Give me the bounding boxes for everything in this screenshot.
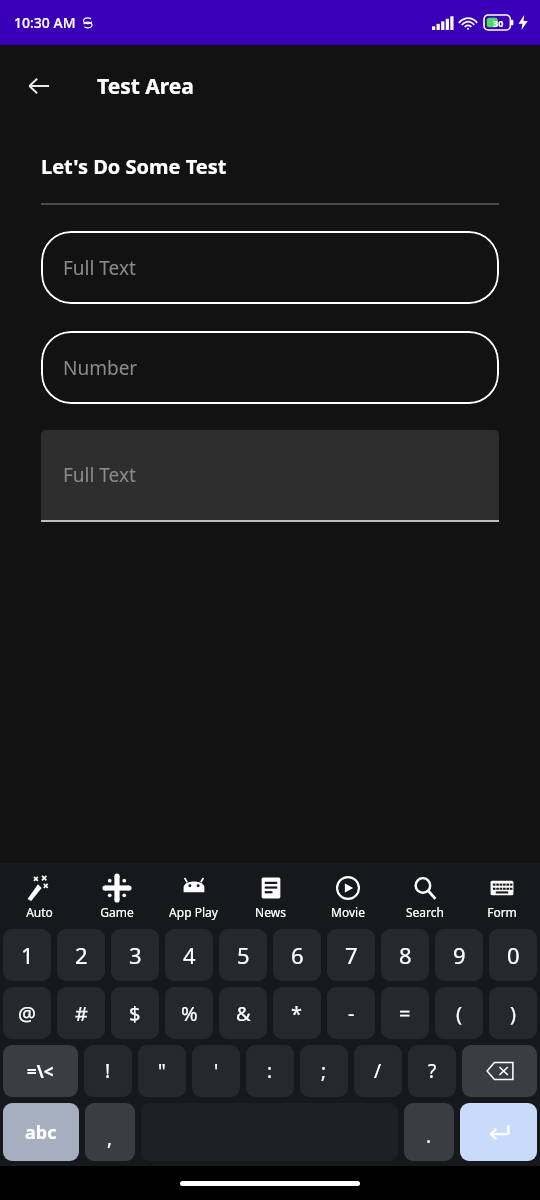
button[interactable]: Auto [0,869,78,925]
staticText: 7 [345,940,358,970]
button[interactable]: Search [386,869,463,925]
staticText: 9 [453,940,466,970]
staticText: * [291,1000,303,1027]
button[interactable]: Backspace [462,1045,537,1097]
button[interactable]: Movie [309,869,386,925]
button[interactable]: 4 [165,929,213,981]
button[interactable]: 5 [219,929,267,981]
button[interactable]: ' [192,1045,240,1097]
staticText: ; [321,1058,327,1084]
staticText: ) [510,1000,516,1027]
staticText: = [399,1000,411,1027]
staticText: Form [487,904,517,920]
button[interactable]: . [404,1103,454,1161]
button[interactable]: abc [3,1103,79,1161]
staticText: Full Text [63,255,136,281]
staticText: Search [406,904,444,920]
staticText: 6 [291,940,304,970]
staticText: & [236,1000,251,1027]
staticText: 1 [21,940,34,970]
staticText: : [267,1058,273,1084]
staticText: Auto [26,904,53,920]
staticText: @ [18,1000,36,1027]
staticText: / [374,1058,382,1084]
staticText: Number [63,355,138,381]
staticText: , [107,1125,113,1151]
button[interactable]: ( [435,987,483,1039]
button[interactable]: : [246,1045,294,1097]
staticText: News [255,904,286,920]
staticText: $ [129,1000,141,1027]
staticText: 5 [237,940,250,970]
button[interactable]: =\< [3,1045,78,1097]
staticText: 4 [183,940,196,970]
button[interactable]: App Play [155,869,232,925]
button[interactable]: ? [408,1045,456,1097]
staticText: # [75,1000,88,1027]
button[interactable]: 0 [489,929,537,981]
button[interactable]: # [57,987,105,1039]
button[interactable]: 1 [3,929,51,981]
staticText: 30 [493,17,504,29]
staticText: 8 [399,940,412,970]
button[interactable]: * [273,987,321,1039]
staticText: - [348,1000,355,1027]
staticText: =\< [27,1060,54,1083]
staticText: Game [100,904,134,920]
staticText: ? [428,1058,437,1084]
button[interactable]: News [232,869,309,925]
staticText: ' [214,1058,219,1084]
staticText: App Play [169,904,218,920]
button[interactable]: Enter [460,1103,537,1161]
staticText: Test Area [97,72,194,101]
button[interactable]: % [165,987,213,1039]
staticText: 10:30 AM [14,13,76,32]
staticText: 0 [507,940,520,970]
button[interactable]: Form [463,869,540,925]
button[interactable]: 2 [57,929,105,981]
button[interactable]: " [138,1045,186,1097]
button[interactable]: Game [78,869,155,925]
button[interactable]: & [219,987,267,1039]
button[interactable]: $ [111,987,159,1039]
staticText: abc [25,1120,57,1145]
staticText: 3 [129,940,142,970]
button[interactable]: Full Text [41,231,499,304]
button[interactable]: Full Text [41,430,499,520]
button[interactable]: Back [15,62,63,110]
staticText: 2 [75,940,88,970]
button[interactable]: 9 [435,929,483,981]
staticText: Movie [331,904,365,920]
button[interactable]: @ [3,987,51,1039]
staticText: " [158,1058,166,1084]
button[interactable]: ) [489,987,537,1039]
button[interactable]: ! [84,1045,132,1097]
button[interactable]: - [327,987,375,1039]
button[interactable]: Number [41,331,499,404]
button[interactable]: 8 [381,929,429,981]
staticText: Let's Do Some Test [41,153,227,180]
button[interactable]: , [85,1103,135,1161]
staticText: ( [456,1000,462,1027]
staticText: ! [105,1058,111,1084]
staticText: . [426,1123,432,1149]
staticText: % [181,1000,198,1027]
button[interactable]: = [381,987,429,1039]
button[interactable]: 3 [111,929,159,981]
button[interactable]: / [354,1045,402,1097]
button[interactable]: 6 [273,929,321,981]
button[interactable]: ; [300,1045,348,1097]
button[interactable]: 7 [327,929,375,981]
staticText: Full Text [63,462,136,488]
